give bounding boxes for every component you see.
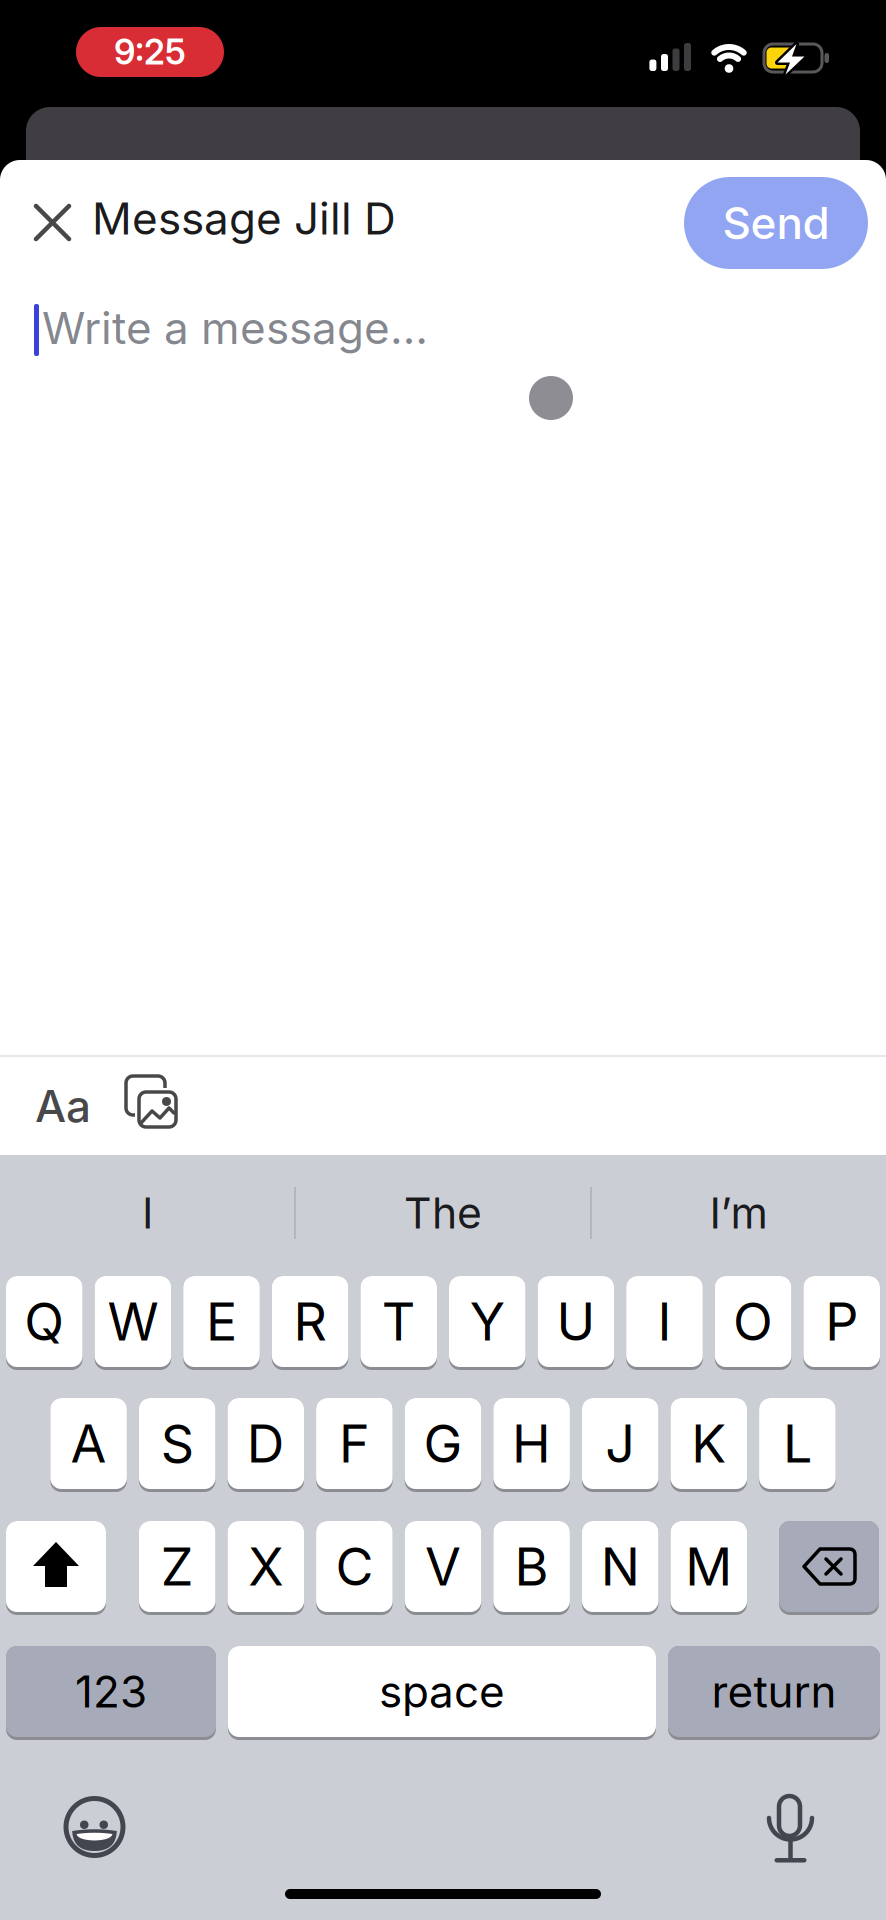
button[interactable]: Send <box>684 177 868 269</box>
button[interactable]: Close <box>22 191 82 251</box>
staticText: F <box>339 1413 370 1474</box>
button[interactable]: D <box>227 1398 304 1492</box>
button[interactable]: Z <box>139 1521 215 1615</box>
button[interactable]: Shift <box>6 1521 106 1615</box>
button[interactable]: 123 <box>6 1646 216 1740</box>
button[interactable]: O <box>715 1276 791 1370</box>
button[interactable]: Write a message <box>32 298 854 362</box>
button[interactable]: K <box>670 1398 747 1492</box>
button[interactable]: V <box>405 1521 481 1615</box>
button[interactable]: G <box>405 1398 481 1492</box>
button[interactable]: Delete <box>779 1521 879 1615</box>
staticText: The <box>404 1188 482 1238</box>
button[interactable]: Screen recording <box>76 27 224 77</box>
button[interactable]: Photos <box>120 1070 184 1134</box>
staticText: Q <box>24 1291 64 1352</box>
button[interactable]: Text formatting <box>28 1074 98 1138</box>
button[interactable]: A <box>50 1398 127 1492</box>
button[interactable]: Emoji <box>56 1789 132 1865</box>
staticText: Z <box>161 1536 194 1597</box>
staticText: S <box>161 1413 194 1474</box>
button[interactable]: W <box>95 1276 171 1370</box>
staticText: O <box>733 1291 773 1352</box>
staticText: X <box>248 1536 283 1597</box>
staticText: Aa <box>35 1080 91 1132</box>
staticText: L <box>783 1413 812 1474</box>
button[interactable]: L <box>759 1398 836 1492</box>
staticText: U <box>556 1291 595 1352</box>
button[interactable]: I <box>626 1276 703 1370</box>
button[interactable]: S <box>139 1398 215 1492</box>
staticText: P <box>825 1291 858 1352</box>
staticText: 9:25 <box>114 32 186 72</box>
button[interactable]: B <box>493 1521 570 1615</box>
staticText: Y <box>470 1291 505 1352</box>
button[interactable]: I’m <box>618 1168 858 1258</box>
staticText: G <box>423 1413 462 1474</box>
button[interactable]: space <box>228 1646 656 1740</box>
staticText: M <box>685 1536 732 1597</box>
button[interactable]: Q <box>6 1276 83 1370</box>
staticText: B <box>515 1536 549 1597</box>
button[interactable]: J <box>582 1398 658 1492</box>
staticText: E <box>206 1291 237 1352</box>
button[interactable]: return <box>668 1646 880 1740</box>
staticText: Send <box>722 197 829 249</box>
button[interactable]: U <box>538 1276 614 1370</box>
staticText: W <box>107 1291 158 1352</box>
staticText: space <box>379 1665 505 1717</box>
staticText: I’m <box>709 1188 767 1238</box>
button[interactable]: T <box>360 1276 437 1370</box>
staticText: T <box>382 1291 416 1352</box>
staticText: K <box>691 1413 726 1474</box>
button[interactable]: R <box>272 1276 348 1370</box>
button[interactable]: Y <box>449 1276 526 1370</box>
staticText: H <box>512 1413 551 1474</box>
button[interactable]: I <box>27 1168 267 1258</box>
button[interactable]: H <box>493 1398 570 1492</box>
button[interactable]: The <box>323 1168 563 1258</box>
staticText: return <box>711 1665 836 1717</box>
button[interactable]: Dictation <box>760 1786 820 1866</box>
button[interactable]: F <box>316 1398 393 1492</box>
button[interactable]: P <box>803 1276 880 1370</box>
staticText: Message Jill D <box>92 192 396 244</box>
staticText: 123 <box>75 1665 147 1717</box>
staticText: C <box>335 1536 373 1597</box>
staticText: I <box>657 1291 671 1352</box>
staticText: A <box>71 1413 107 1474</box>
staticText: Write a message… <box>42 302 428 354</box>
staticText: V <box>425 1536 461 1597</box>
staticText: N <box>601 1536 640 1597</box>
button[interactable]: C <box>316 1521 393 1615</box>
staticText: I <box>142 1188 153 1238</box>
button[interactable]: M <box>670 1521 747 1615</box>
staticText: D <box>247 1413 285 1474</box>
staticText: J <box>605 1413 635 1474</box>
button[interactable]: E <box>183 1276 260 1370</box>
button[interactable]: N <box>582 1521 658 1615</box>
staticText: R <box>294 1291 327 1352</box>
button[interactable]: X <box>227 1521 304 1615</box>
